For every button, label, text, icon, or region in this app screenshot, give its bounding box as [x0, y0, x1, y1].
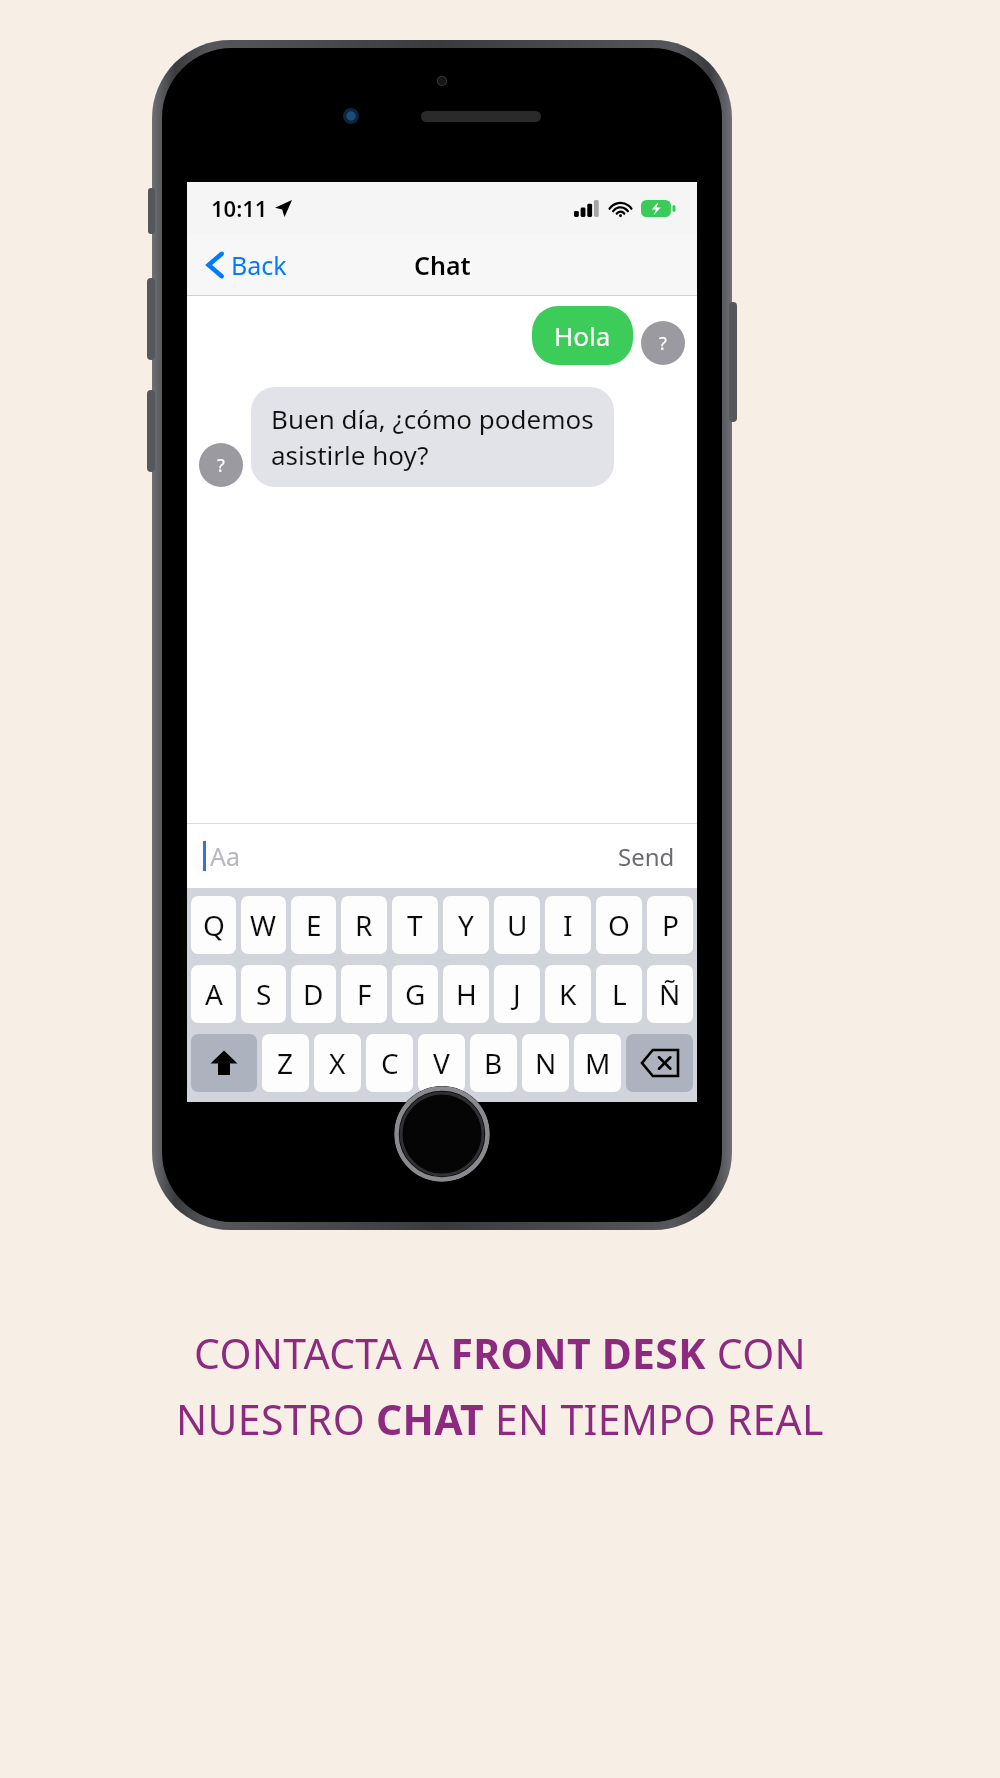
staticText: Send — [618, 840, 675, 873]
staticText: Aa — [210, 839, 241, 873]
staticText: E — [306, 906, 322, 944]
staticText: Hola — [554, 318, 611, 353]
staticText: I — [563, 906, 573, 944]
button[interactable]: G — [392, 965, 438, 1023]
button[interactable]: J — [494, 965, 540, 1023]
button[interactable]: Send — [612, 834, 681, 879]
staticText: W — [250, 906, 277, 944]
button[interactable]: Q — [191, 896, 236, 954]
button[interactable]: U — [494, 896, 540, 954]
button[interactable]: R — [341, 896, 387, 954]
button[interactable]: D — [291, 965, 336, 1023]
button[interactable]: M — [574, 1034, 621, 1092]
staticText: A — [205, 975, 223, 1013]
button[interactable]: V — [418, 1034, 465, 1092]
button[interactable]: S — [241, 965, 286, 1023]
staticText: M — [585, 1044, 611, 1082]
staticText: F — [357, 975, 372, 1013]
staticText: P — [662, 906, 679, 944]
button[interactable]: O — [596, 896, 642, 954]
staticText: T — [407, 906, 423, 944]
button[interactable]: ? — [199, 387, 685, 487]
staticText: Z — [277, 1044, 294, 1082]
button[interactable]: T — [392, 896, 438, 954]
staticText: ? — [659, 331, 667, 356]
button[interactable]: N — [522, 1034, 569, 1092]
staticText: X — [329, 1044, 346, 1082]
staticText: Ñ — [659, 975, 681, 1013]
staticText: U — [507, 906, 528, 944]
button[interactable]: P — [647, 896, 693, 954]
staticText: Q — [203, 906, 225, 944]
button[interactable]: C — [366, 1034, 413, 1092]
button[interactable]: F — [341, 965, 387, 1023]
staticText: G — [405, 975, 426, 1013]
button[interactable]: E — [291, 896, 336, 954]
staticText: 10:11 — [211, 193, 268, 223]
staticText: O — [608, 906, 630, 944]
button[interactable]: Backspace — [626, 1034, 693, 1092]
staticText: Y — [458, 906, 474, 944]
button[interactable]: Ñ — [647, 965, 693, 1023]
button[interactable]: Back — [201, 242, 293, 288]
button[interactable]: B — [470, 1034, 517, 1092]
button[interactable]: L — [596, 965, 642, 1023]
button[interactable]: A — [191, 965, 236, 1023]
button[interactable]: Home — [394, 1086, 490, 1182]
staticText: N — [535, 1044, 557, 1082]
staticText: Chat — [414, 248, 471, 282]
staticText: D — [303, 975, 324, 1013]
button[interactable]: W — [241, 896, 286, 954]
staticText: Back — [231, 248, 287, 282]
staticText: C — [381, 1044, 399, 1082]
staticText: B — [484, 1044, 503, 1082]
button[interactable]: Shift — [191, 1034, 257, 1092]
button[interactable]: H — [443, 965, 489, 1023]
staticText: S — [256, 975, 272, 1013]
staticText: L — [612, 975, 627, 1013]
button[interactable]: Y — [443, 896, 489, 954]
staticText: J — [513, 975, 521, 1013]
button[interactable]: Z — [262, 1034, 309, 1092]
staticText: ? — [217, 453, 225, 478]
button[interactable]: I — [545, 896, 591, 954]
staticText: V — [433, 1044, 450, 1082]
button[interactable]: Hola — [199, 306, 685, 365]
button[interactable]: X — [314, 1034, 361, 1092]
staticText: Buen día, ¿cómo podemos asistirle hoy? — [271, 401, 594, 473]
staticText: K — [559, 975, 577, 1013]
staticText: H — [456, 975, 477, 1013]
staticText: R — [355, 906, 373, 944]
button[interactable]: K — [545, 965, 591, 1023]
button[interactable]: Aa — [203, 839, 612, 873]
staticText: NUESTRO CHAT EN TIEMPO REAL — [176, 1391, 824, 1447]
staticText: CONTACTA A FRONT DESK CON — [194, 1325, 806, 1381]
